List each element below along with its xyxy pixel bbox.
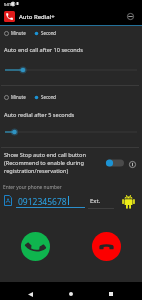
staticText: 0912345678 [18,196,67,208]
staticText: Show Stop auto end call button (Recommen… [4,151,86,175]
staticText: Second [41,94,57,100]
button[interactable]: Back [23,287,37,300]
button[interactable]: Second [34,94,57,100]
button[interactable]: Info [127,159,138,170]
staticText: 5:01 [4,2,12,7]
button[interactable]: Recents [104,287,118,300]
button[interactable]: Home [64,287,78,300]
button[interactable]: Pick contact [2,194,13,207]
button[interactable]: Toggle stop button [103,157,121,169]
staticText: Minute [11,94,26,100]
button[interactable]: Minute [4,94,26,100]
button[interactable]: Second [34,30,57,36]
staticText: Enter your phone number [3,184,62,191]
button[interactable]: Hang up [92,232,121,261]
button[interactable]: Minute [4,30,26,36]
button[interactable]: Slider [0,126,142,138]
staticText: Minute [11,30,26,36]
staticText: Ext. [90,197,101,205]
staticText: Auto Redial+ [19,13,55,21]
button[interactable]: Android [121,194,136,210]
button[interactable]: Menu [124,10,137,23]
staticText: Second [41,30,57,36]
button[interactable]: Call [21,232,50,261]
staticText: Auto end call after 10 seconds [4,46,83,54]
button[interactable]: Slider [0,64,142,76]
staticText: Auto redial after 5 seconds [4,111,75,119]
button[interactable]: App icon [4,11,15,22]
button[interactable]: Show Stop auto end call button (Recommen… [2,150,88,174]
